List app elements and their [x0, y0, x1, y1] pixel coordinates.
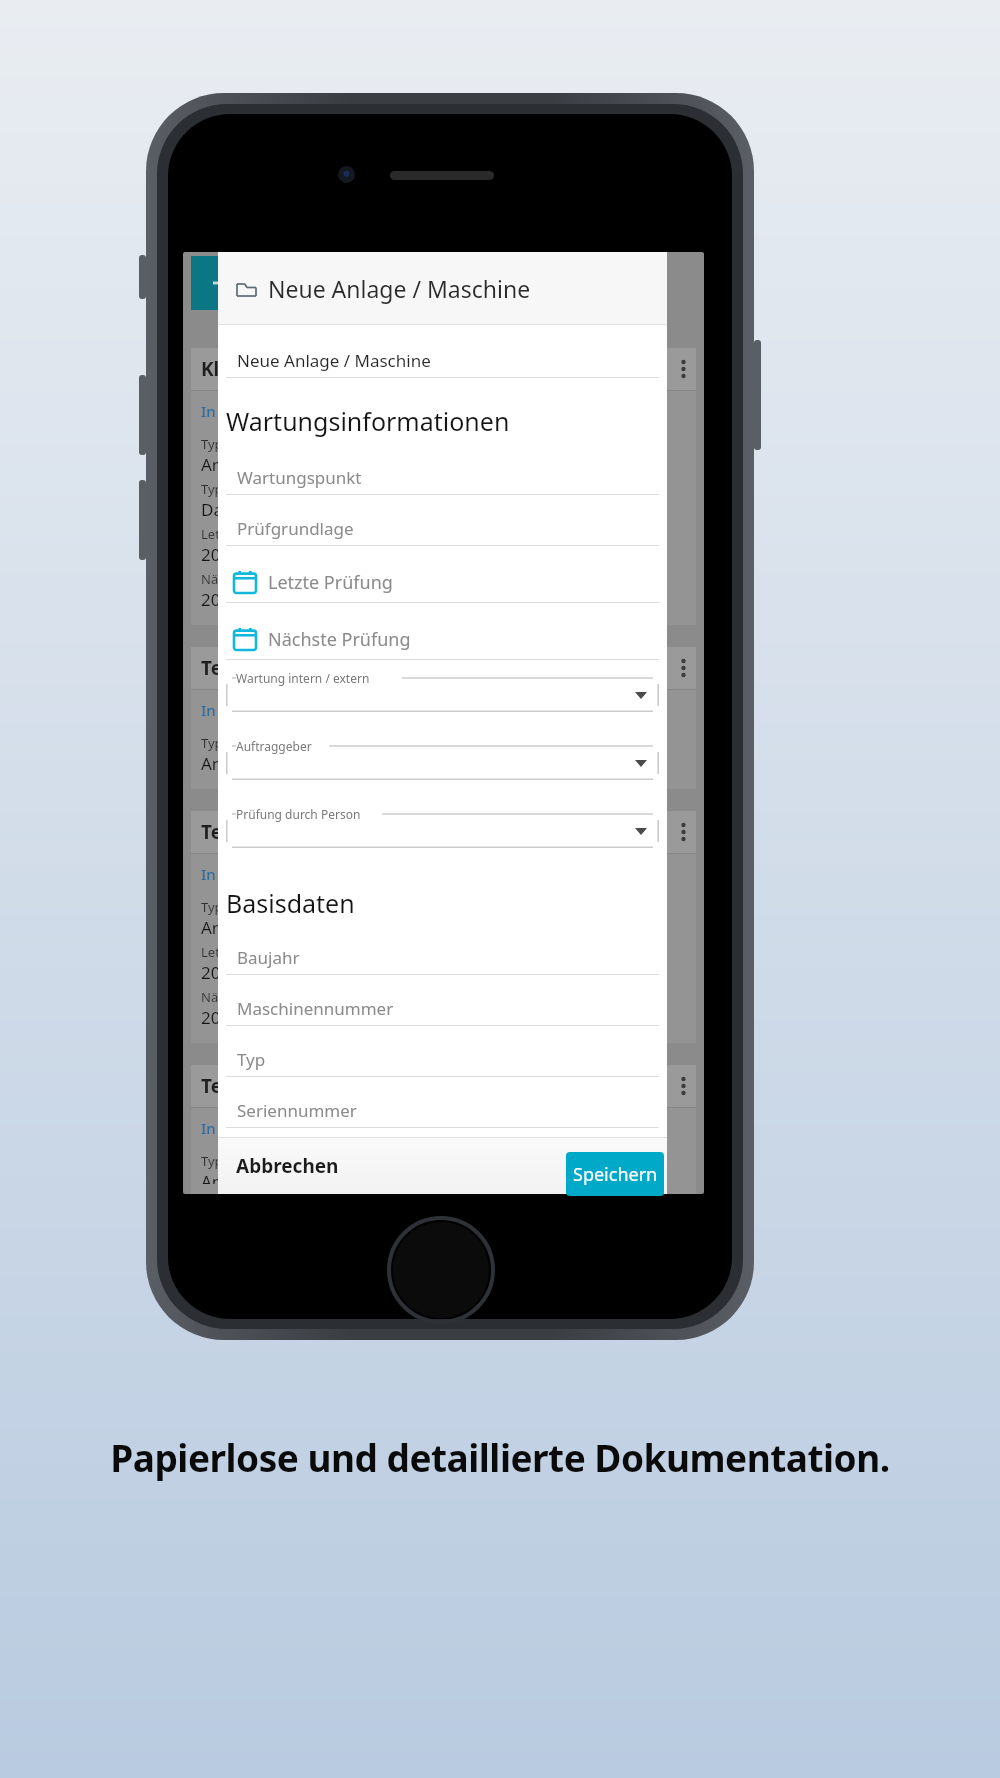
staticText: Papierlose und detaillierte Dokumentatio…: [0, 1432, 1000, 1482]
button[interactable]: Prüfgrundlage: [226, 511, 659, 546]
button[interactable]: Testanlage: [191, 1065, 696, 1194]
staticText: Maschinennummer: [237, 997, 394, 1020]
staticText: Letzte Prüfung: [268, 570, 393, 595]
staticText: Näch: [201, 988, 233, 1006]
button[interactable]: Typ: [226, 1042, 659, 1077]
staticText: 2025: [201, 1006, 240, 1029]
staticText: Testanlage: [201, 819, 304, 845]
staticText: Abbrechen: [236, 1153, 339, 1179]
staticText: In Arbeit: [201, 700, 264, 720]
staticText: In Arbeit: [201, 864, 264, 884]
staticText: Wartung intern / extern: [236, 670, 370, 686]
button[interactable]: Neue Anlage / Maschine: [226, 343, 659, 378]
staticText: Anlage: [201, 752, 257, 775]
staticText: Testanlage: [201, 1073, 304, 1099]
button[interactable]: Klimaanlage: [191, 348, 696, 625]
button[interactable]: Nächste Prüfung: [226, 619, 659, 660]
button[interactable]: Abbrechen: [228, 1145, 347, 1187]
staticText: Wartungsinformationen: [226, 404, 510, 438]
button[interactable]: Testanlage: [191, 811, 696, 1043]
button[interactable]: Wartungspunkt: [226, 460, 659, 495]
staticText: Auftraggeber: [236, 738, 312, 754]
staticText: Typ: [237, 1048, 266, 1071]
button[interactable]: Testanlage: [191, 647, 696, 789]
staticText: Näch: [201, 570, 233, 588]
staticText: Prüfgrundlage: [237, 517, 354, 540]
staticText: Typ:: [201, 898, 227, 916]
staticText: Prüfung durch Person: [236, 806, 361, 822]
staticText: Neue Anlage / Maschine: [237, 349, 431, 372]
staticText: Baujahr: [237, 946, 300, 969]
staticText: Typ:: [201, 734, 227, 752]
button[interactable]: Speichern: [566, 1152, 664, 1196]
button[interactable]: Letzte Prüfung: [226, 562, 659, 603]
button[interactable]: Auftraggeber: [226, 738, 659, 780]
staticText: Basisdaten: [226, 886, 355, 920]
button[interactable]: Prüfung durch Person: [226, 806, 659, 848]
staticText: Klimaanlage: [201, 356, 319, 382]
staticText: Seriennummer: [237, 1099, 357, 1122]
button[interactable]: Baujahr: [226, 940, 659, 975]
staticText: Typ:: [201, 480, 227, 498]
button[interactable]: Maschinennummer: [226, 991, 659, 1026]
staticText: Daikin: [201, 498, 252, 521]
staticText: Anlage: [201, 916, 257, 939]
staticText: Letzte: [201, 943, 238, 961]
staticText: Letzte: [201, 525, 238, 543]
button[interactable]: Hinzufügen: [191, 256, 253, 310]
staticText: Typ:: [201, 1152, 227, 1170]
staticText: 2024: [201, 543, 240, 566]
staticText: Nächste Prüfung: [268, 627, 411, 652]
staticText: 2025: [201, 588, 240, 611]
staticText: In Arbeit: [201, 401, 264, 421]
button[interactable]: Seriennummer: [226, 1093, 659, 1128]
staticText: In Arbeit: [201, 1118, 264, 1138]
staticText: Neue Anlage / Maschine: [268, 273, 531, 304]
button[interactable]: Wartung intern / extern: [226, 670, 659, 712]
staticText: Testanlage: [201, 655, 304, 681]
staticText: Wartungspunkt: [237, 466, 362, 489]
staticText: Anlage: [201, 453, 257, 476]
staticText: Typ:: [201, 435, 227, 453]
staticText: 2024: [201, 961, 240, 984]
staticText: Anlage: [201, 1170, 257, 1184]
staticText: Speichern: [573, 1162, 658, 1187]
